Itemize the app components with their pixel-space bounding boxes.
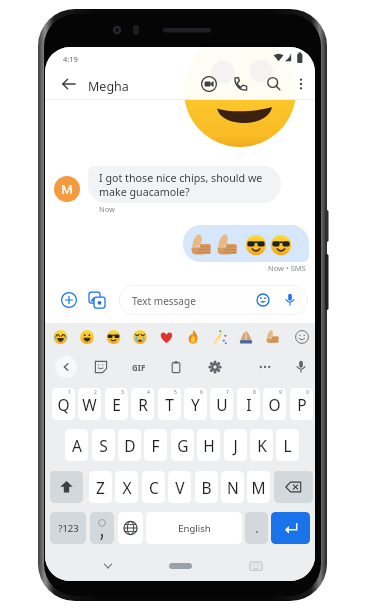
staticText: 6 <box>200 389 203 396</box>
button[interactable]: K <box>250 429 273 461</box>
button[interactable]: Add attachment <box>57 288 81 312</box>
button[interactable]: More options <box>290 73 312 95</box>
button[interactable]: M <box>54 176 80 202</box>
button[interactable]: Settings <box>204 356 226 378</box>
staticText: Q <box>57 394 70 415</box>
button[interactable]: Call <box>229 72 253 96</box>
staticText: U <box>216 394 228 415</box>
button[interactable]: D <box>118 429 141 461</box>
staticText: Text message <box>132 294 196 308</box>
button[interactable]: S <box>92 429 115 461</box>
staticText: N <box>227 477 239 498</box>
staticText: I <box>246 394 252 415</box>
button[interactable]: L <box>276 429 299 461</box>
button[interactable]: M <box>247 471 270 503</box>
button[interactable]: P <box>290 388 313 420</box>
staticText: Megha <box>88 78 129 94</box>
staticText: W <box>82 394 97 415</box>
button[interactable]: I <box>237 388 260 420</box>
button[interactable]: Emoji <box>253 290 273 310</box>
button[interactable]: ?123 <box>50 512 86 544</box>
button[interactable]: G <box>171 429 194 461</box>
button[interactable]: GIF <box>126 356 152 378</box>
staticText: E <box>112 394 121 415</box>
button[interactable]: V <box>168 471 191 503</box>
staticText: Z <box>96 477 105 498</box>
button[interactable]: English <box>146 512 242 544</box>
button[interactable]: Q <box>52 388 75 420</box>
staticText: 4:19 <box>63 54 78 64</box>
button[interactable]: Home <box>169 563 192 569</box>
button[interactable]: Voice typing <box>290 356 312 378</box>
button[interactable]: Hide keyboard <box>95 553 121 579</box>
staticText: . <box>255 519 259 537</box>
staticText: 1 <box>68 389 71 396</box>
button[interactable]: C <box>142 471 165 503</box>
button[interactable]: Change language <box>118 512 143 544</box>
button[interactable]: T <box>158 388 181 420</box>
staticText: 3 <box>121 389 124 396</box>
button[interactable]: Search <box>262 72 286 96</box>
staticText: V <box>175 477 185 498</box>
staticText: R <box>138 394 148 415</box>
staticText: 9 <box>279 389 282 396</box>
button[interactable]: . <box>245 512 268 544</box>
staticText: I got those nice chips, should we make g… <box>99 171 263 199</box>
button[interactable]: B <box>195 471 218 503</box>
staticText: English <box>178 522 211 535</box>
button[interactable]: E <box>105 388 128 420</box>
staticText: O <box>268 394 281 415</box>
button[interactable]: A <box>65 429 88 461</box>
staticText: K <box>257 435 267 456</box>
button[interactable]: Emoji picker <box>292 327 312 347</box>
staticText: 7 <box>226 389 229 396</box>
button[interactable]: More <box>254 356 276 378</box>
button[interactable]: N <box>221 471 244 503</box>
button[interactable]: X <box>115 471 138 503</box>
button[interactable]: Shift <box>50 471 83 503</box>
button[interactable]: Voice input <box>280 290 300 310</box>
staticText: G <box>177 435 189 456</box>
button[interactable]: Backspace <box>274 471 313 503</box>
button[interactable]: Clipboard <box>165 356 187 378</box>
button[interactable]: R <box>131 388 154 420</box>
staticText: X <box>122 477 132 498</box>
button[interactable]: J <box>224 429 247 461</box>
staticText: S <box>99 435 108 456</box>
staticText: Now <box>99 204 115 214</box>
button[interactable]: Megha <box>88 78 144 94</box>
staticText: M <box>61 180 73 198</box>
staticText: 4 <box>147 389 150 396</box>
staticText: ?123 <box>58 522 79 535</box>
staticText: J <box>233 435 238 456</box>
staticText: Now • SMS <box>268 263 306 273</box>
button[interactable]: O <box>263 388 286 420</box>
staticText: H <box>203 435 215 456</box>
button[interactable]: Y <box>184 388 207 420</box>
button[interactable]: F <box>144 429 167 461</box>
button[interactable]: Enter <box>271 512 310 544</box>
staticText: L <box>283 435 292 456</box>
staticText: Y <box>191 394 200 415</box>
staticText: 2 <box>94 389 97 396</box>
button[interactable]: Back <box>56 71 82 97</box>
button[interactable]: Z <box>89 471 112 503</box>
staticText: M <box>251 477 266 498</box>
button[interactable]: Video call <box>197 72 221 96</box>
staticText: 5 <box>174 389 177 396</box>
staticText: T <box>165 394 174 415</box>
button[interactable]: Comma and emoji <box>90 512 114 544</box>
button[interactable]: H <box>197 429 220 461</box>
button[interactable]: I got those nice chips, should we make g… <box>88 166 281 203</box>
button[interactable]: Send image <box>85 288 109 312</box>
button[interactable]: Back <box>55 356 77 378</box>
button[interactable]: W <box>78 388 101 420</box>
staticText: GIF <box>132 362 146 373</box>
staticText: 8 <box>253 389 256 396</box>
button[interactable]: Text message <box>119 285 308 315</box>
button[interactable]: Stickers <box>90 356 112 378</box>
staticText: P <box>297 394 307 415</box>
button[interactable] <box>183 225 309 262</box>
button[interactable]: U <box>210 388 233 420</box>
button[interactable]: Switch keyboard <box>243 553 269 579</box>
